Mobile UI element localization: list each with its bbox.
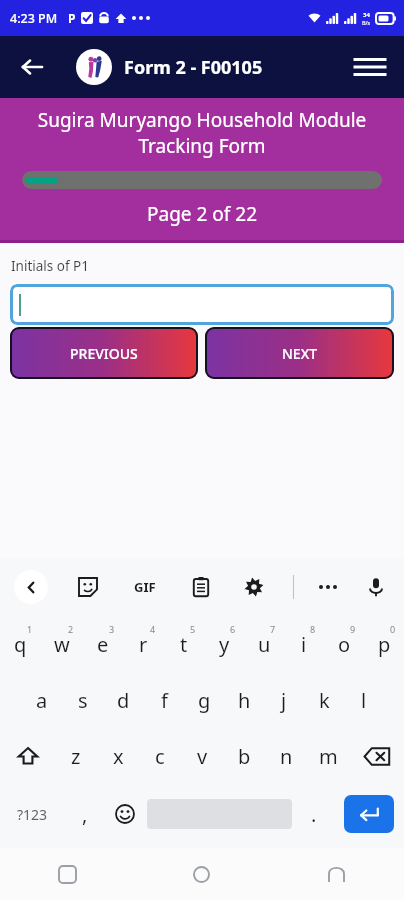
button[interactable]: n bbox=[265, 728, 307, 784]
button[interactable]: x bbox=[97, 728, 139, 784]
button[interactable]: Menu bbox=[348, 45, 392, 89]
button[interactable]: q bbox=[0, 616, 41, 672]
button[interactable]: Voice input bbox=[362, 573, 390, 601]
button[interactable]: Collapse toolbar bbox=[14, 570, 48, 604]
staticText: s bbox=[78, 687, 88, 714]
button[interactable]: Shift bbox=[0, 728, 55, 784]
staticText: v bbox=[197, 743, 208, 770]
staticText: 6 bbox=[230, 623, 236, 635]
staticText: j bbox=[281, 687, 287, 714]
button[interactable]: Recent apps bbox=[0, 848, 134, 900]
staticText: g bbox=[198, 687, 211, 714]
button[interactable]: r bbox=[123, 616, 164, 672]
button[interactable]: ?123 bbox=[0, 784, 65, 844]
button[interactable]: Home bbox=[134, 848, 269, 900]
staticText: 0 bbox=[390, 623, 396, 635]
staticText: 5 bbox=[190, 623, 196, 635]
staticText: 1 bbox=[27, 623, 33, 635]
staticText: q bbox=[14, 631, 27, 658]
button[interactable]: b bbox=[223, 728, 265, 784]
staticText: h bbox=[238, 687, 251, 714]
button[interactable]: Settings bbox=[240, 573, 268, 601]
button[interactable]: Back bbox=[269, 848, 404, 900]
staticText: c bbox=[155, 743, 165, 770]
staticText: e bbox=[97, 631, 109, 658]
button[interactable]: Comma bbox=[65, 784, 105, 844]
button[interactable]: More options bbox=[319, 573, 337, 601]
staticText: w bbox=[54, 631, 70, 658]
staticText: o bbox=[338, 631, 351, 658]
button[interactable]: PREVIOUS bbox=[10, 327, 198, 379]
staticText: 9 bbox=[350, 623, 356, 635]
staticText: Form 2 - F00105 bbox=[124, 55, 263, 80]
staticText: Initials of P1 bbox=[11, 257, 90, 275]
staticText: t bbox=[180, 631, 188, 658]
staticText: k bbox=[319, 687, 330, 714]
staticText: y bbox=[219, 631, 230, 658]
staticText: 34 bbox=[363, 11, 370, 19]
button[interactable]: t bbox=[164, 616, 204, 672]
staticText: 4 bbox=[150, 623, 156, 635]
button[interactable]: w bbox=[41, 616, 82, 672]
staticText: z bbox=[71, 743, 81, 770]
staticText: 7 bbox=[270, 623, 276, 635]
button[interactable]: s bbox=[62, 672, 103, 728]
staticText: b bbox=[238, 743, 251, 770]
staticText: Page 2 of 22 bbox=[147, 201, 258, 227]
button[interactable]: p bbox=[364, 616, 404, 672]
button[interactable]: f bbox=[144, 672, 184, 728]
button[interactable]: o bbox=[324, 616, 364, 672]
button[interactable]: Enter bbox=[344, 795, 394, 833]
staticText: m bbox=[319, 743, 338, 770]
button[interactable]: h bbox=[224, 672, 264, 728]
staticText: p bbox=[378, 631, 391, 658]
staticText: l bbox=[361, 687, 367, 714]
staticText: , bbox=[82, 801, 88, 828]
staticText: n bbox=[280, 743, 293, 770]
staticText: B/s bbox=[362, 19, 371, 26]
button[interactable]: c bbox=[139, 728, 181, 784]
staticText: NEXT bbox=[282, 344, 318, 363]
button[interactable]: u bbox=[244, 616, 284, 672]
button[interactable]: Period bbox=[294, 784, 334, 844]
staticText: f bbox=[161, 687, 168, 714]
button[interactable]: g bbox=[184, 672, 224, 728]
button[interactable]: Emoji bbox=[105, 784, 145, 844]
staticText: x bbox=[113, 743, 124, 770]
button[interactable]: Clipboard bbox=[187, 573, 215, 601]
button[interactable]: y bbox=[204, 616, 244, 672]
button[interactable]: j bbox=[264, 672, 304, 728]
button[interactable]: k bbox=[304, 672, 344, 728]
staticText: Sugira Muryango Household Module Trackin… bbox=[8, 107, 396, 159]
button[interactable]: d bbox=[103, 672, 144, 728]
staticText: PREVIOUS bbox=[70, 344, 138, 363]
staticText: 2 bbox=[68, 623, 74, 635]
staticText: 4:23 PM bbox=[10, 10, 58, 27]
button[interactable]: Stickers bbox=[74, 573, 102, 601]
button[interactable]: Backspace bbox=[349, 728, 404, 784]
staticText: u bbox=[258, 631, 271, 658]
staticText: a bbox=[36, 687, 48, 714]
button[interactable]: Back bbox=[10, 45, 54, 89]
staticText: d bbox=[117, 687, 130, 714]
button[interactable] bbox=[10, 284, 394, 325]
staticText: GIF bbox=[134, 578, 156, 596]
staticText: r bbox=[139, 631, 148, 658]
button[interactable]: a bbox=[21, 672, 62, 728]
button[interactable]: m bbox=[307, 728, 349, 784]
button[interactable]: i bbox=[284, 616, 324, 672]
staticText: P bbox=[68, 10, 76, 26]
staticText: 3 bbox=[109, 623, 115, 635]
staticText: ?123 bbox=[17, 805, 48, 824]
button[interactable]: z bbox=[55, 728, 97, 784]
button[interactable]: NEXT bbox=[205, 327, 394, 379]
staticText: i bbox=[301, 631, 307, 658]
button[interactable]: v bbox=[181, 728, 223, 784]
button[interactable]: e bbox=[82, 616, 123, 672]
button[interactable]: GIF bbox=[128, 570, 162, 604]
button[interactable]: l bbox=[344, 672, 384, 728]
staticText: 8 bbox=[310, 623, 316, 635]
staticText: . bbox=[311, 801, 317, 828]
